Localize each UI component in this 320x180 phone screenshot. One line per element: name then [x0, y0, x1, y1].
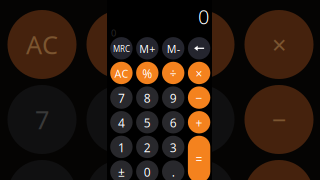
- button[interactable]: 8: [136, 86, 158, 109]
- staticText: ×: [272, 28, 286, 61]
- staticText: 7: [35, 103, 49, 136]
- button[interactable]: ÷: [162, 62, 184, 84]
- staticText: 9: [170, 90, 177, 106]
- staticText: ×: [196, 66, 203, 81]
- staticText: AC: [114, 66, 128, 81]
- button[interactable]: +: [188, 111, 210, 133]
- button[interactable]: 0: [136, 160, 158, 180]
- button[interactable]: 3: [162, 136, 184, 158]
- button[interactable]: ±: [110, 160, 133, 180]
- staticText: 1: [118, 139, 125, 155]
- staticText: −: [272, 103, 286, 136]
- staticText: 6: [170, 115, 177, 131]
- button[interactable]: M+: [136, 37, 158, 59]
- button[interactable]: 1: [110, 136, 133, 158]
- staticText: 0: [198, 3, 209, 30]
- staticText: ÷: [170, 66, 177, 81]
- staticText: %: [142, 66, 152, 81]
- staticText: .: [172, 164, 175, 180]
- button[interactable]: =: [188, 136, 210, 180]
- staticText: ±: [118, 164, 125, 180]
- button[interactable]: History: [108, 28, 118, 38]
- button[interactable]: %: [136, 62, 158, 84]
- staticText: M+: [139, 42, 155, 56]
- button[interactable]: ×: [188, 62, 210, 84]
- staticText: 4: [118, 115, 125, 131]
- staticText: M-: [167, 42, 180, 56]
- button[interactable]: 6: [162, 111, 184, 133]
- staticText: 0: [111, 27, 116, 39]
- staticText: AC: [26, 28, 58, 61]
- staticText: 5: [144, 115, 151, 131]
- staticText: 2: [144, 139, 151, 155]
- button[interactable]: AC: [110, 62, 133, 84]
- button[interactable]: 4: [110, 111, 133, 133]
- staticText: 3: [170, 139, 177, 155]
- button[interactable]: −: [188, 86, 210, 109]
- staticText: 7: [118, 90, 125, 106]
- staticText: 0: [144, 164, 151, 180]
- button[interactable]: 7: [110, 86, 133, 109]
- staticText: −: [196, 90, 203, 106]
- staticText: MRC: [113, 44, 130, 54]
- button[interactable]: 9: [162, 86, 184, 109]
- button[interactable]: MRC: [110, 37, 133, 59]
- staticText: +: [196, 115, 203, 131]
- button[interactable]: Delete: [188, 37, 210, 59]
- button[interactable]: .: [162, 160, 184, 180]
- button[interactable]: M-: [162, 37, 184, 59]
- button[interactable]: 5: [136, 111, 158, 133]
- button[interactable]: 2: [136, 136, 158, 158]
- staticText: =: [196, 151, 203, 167]
- staticText: 8: [144, 90, 151, 106]
